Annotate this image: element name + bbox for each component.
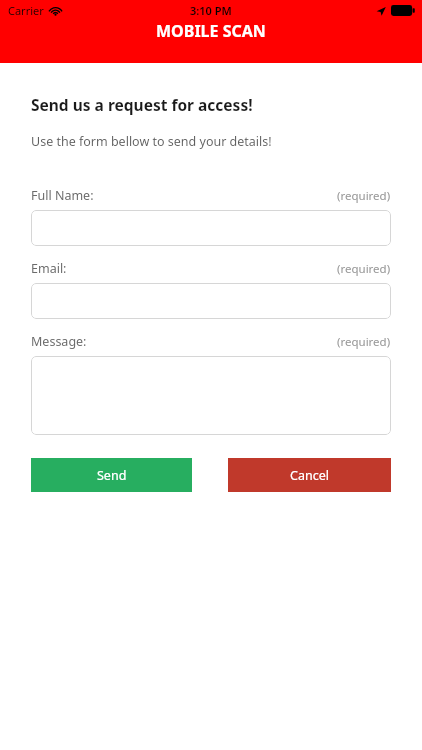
staticText: Cancel: [290, 467, 329, 484]
button[interactable]: Send: [31, 458, 192, 492]
button[interactable]: [31, 283, 391, 319]
button[interactable]: [31, 210, 391, 246]
staticText: Email:: [31, 260, 67, 277]
staticText: Full Name:: [31, 187, 94, 204]
staticText: MOBILE SCAN: [156, 20, 266, 42]
staticText: Message:: [31, 333, 87, 350]
staticText: (required): [337, 334, 391, 350]
staticText: (required): [337, 188, 391, 204]
staticText: Use the form bellow to send your details…: [31, 133, 272, 150]
button[interactable]: Cancel: [228, 458, 391, 492]
staticText: (required): [337, 261, 391, 277]
staticText: 3:10 PM: [190, 3, 232, 18]
staticText: Carrier: [8, 3, 44, 18]
staticText: Send us a request for access!: [31, 94, 253, 115]
button[interactable]: [31, 356, 391, 435]
staticText: Send: [97, 467, 127, 484]
